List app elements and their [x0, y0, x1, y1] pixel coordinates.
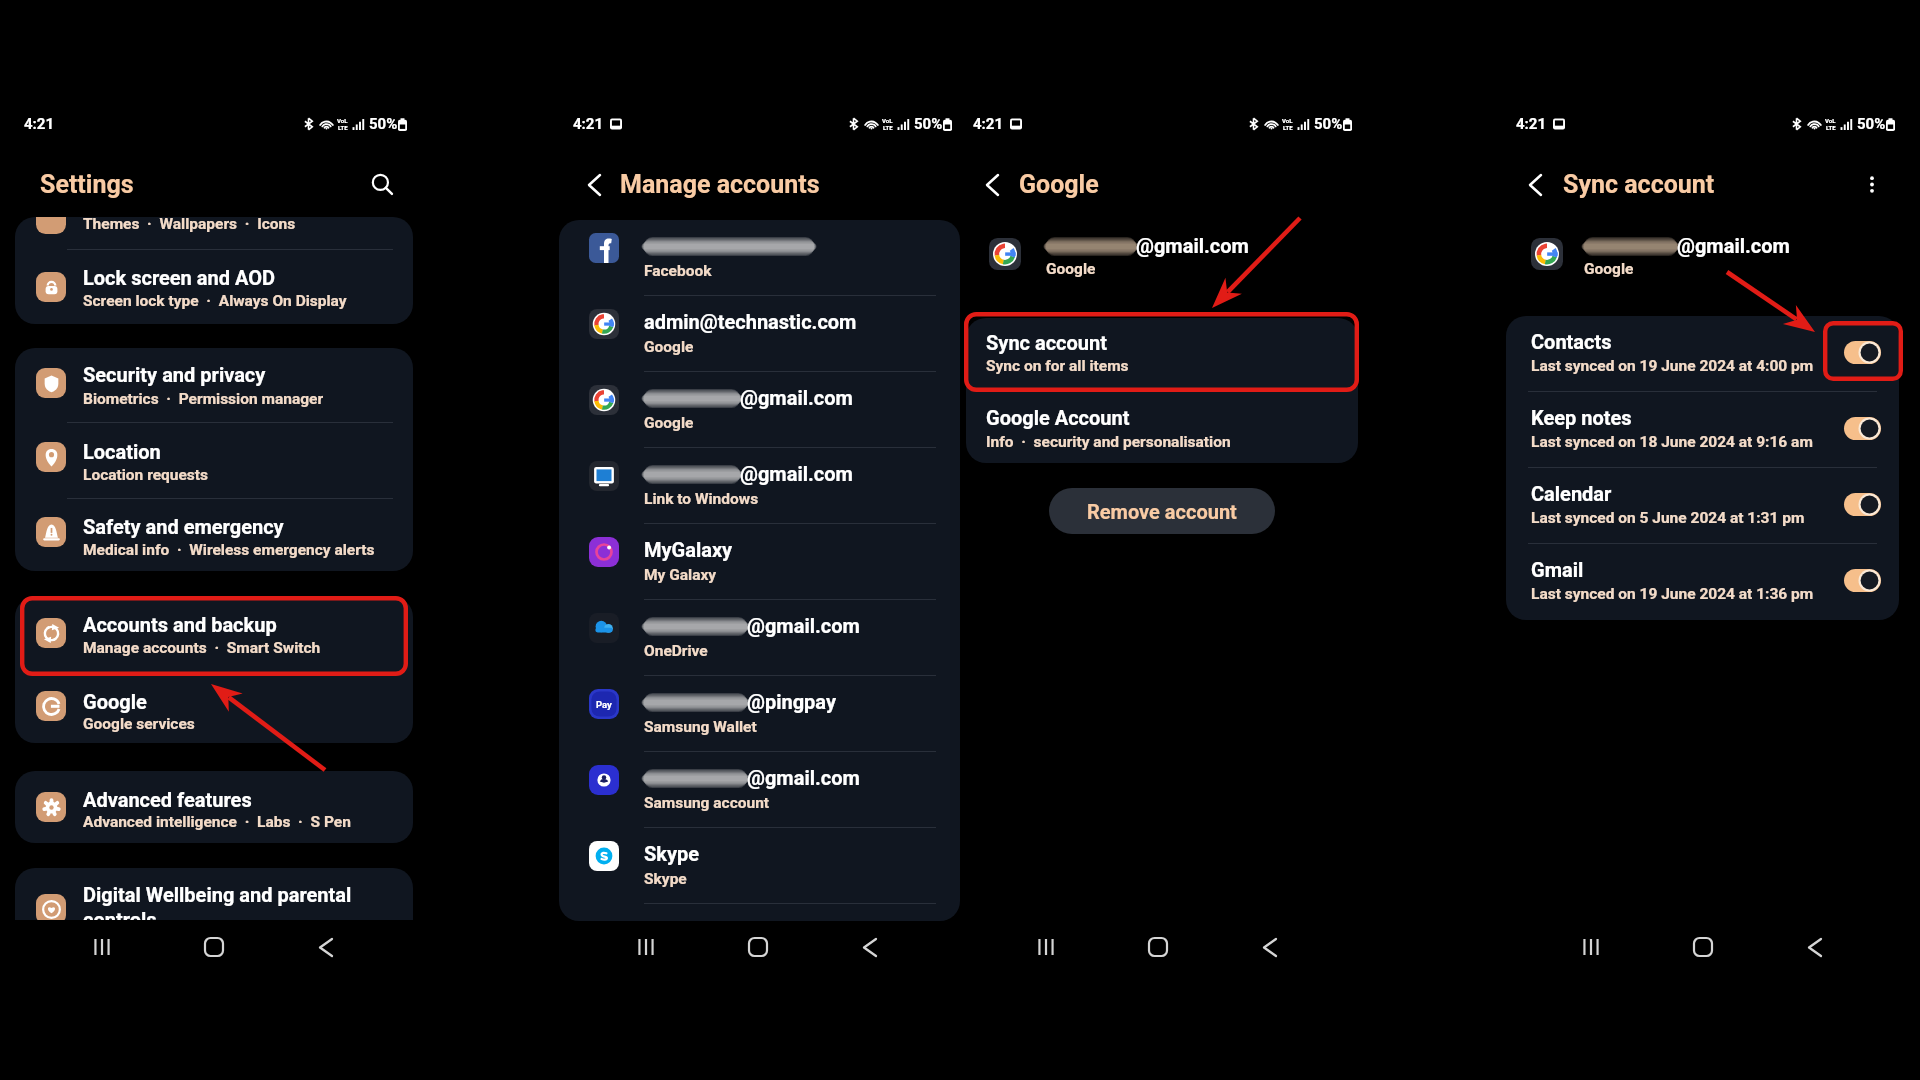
staticText: Sync account [1563, 170, 1715, 199]
staticText: Digital Wellbeing and parental controls [83, 883, 352, 920]
staticText: Security and privacy [83, 363, 266, 386]
button[interactable]: Toggle Keep notes [1844, 417, 1881, 440]
button[interactable] [559, 676, 960, 752]
staticText: Medical info · Wireless emergency alerts [83, 541, 375, 559]
staticText: Sync on for all items [986, 357, 1129, 375]
button[interactable] [1506, 468, 1899, 544]
button[interactable]: Navigate up [1518, 168, 1552, 202]
button[interactable]: Search [361, 163, 403, 205]
staticText: Google [644, 338, 694, 356]
button[interactable]: Back [304, 925, 348, 969]
staticText: Google Account [986, 406, 1130, 429]
staticText: Google [1019, 170, 1099, 199]
staticText: 50% [1314, 115, 1343, 133]
staticText: Google [83, 690, 147, 713]
staticText: Skype [644, 870, 687, 888]
staticText: 4:21 [1516, 115, 1547, 133]
staticText: LTE [1826, 124, 1836, 131]
staticText: Gmail [1531, 558, 1584, 581]
button[interactable]: Navigate up [577, 168, 611, 202]
button[interactable] [966, 391, 1358, 463]
staticText: Last synced on 5 June 2024 at 1:31 pm [1531, 509, 1805, 527]
staticText: Settings [40, 170, 134, 199]
staticText: LTE [338, 124, 348, 131]
staticText: Last synced on 19 June 2024 at 4:00 pm [1531, 357, 1814, 375]
staticText: Manage accounts · Smart Switch [83, 639, 321, 657]
staticText: Contacts [1531, 330, 1612, 353]
button[interactable] [559, 448, 960, 524]
staticText: Location [83, 440, 161, 463]
button[interactable]: Toggle Gmail [1844, 569, 1881, 592]
staticText: 50% [1857, 115, 1886, 133]
staticText: Facebook [644, 262, 712, 280]
staticText: 4:21 [573, 115, 604, 133]
button[interactable]: More options [1855, 167, 1889, 201]
staticText: Location requests [83, 466, 209, 484]
button[interactable]: Recents [624, 925, 668, 969]
staticText: Themes · Wallpapers · Icons [83, 217, 296, 233]
button[interactable]: Back [848, 925, 892, 969]
button[interactable]: Recents [1569, 925, 1613, 969]
button[interactable]: Back [1248, 925, 1292, 969]
staticText: MyGalaxy [644, 538, 733, 561]
button[interactable]: Navigate up [975, 168, 1009, 202]
staticText: Accounts and backup [83, 613, 277, 636]
staticText: Skype [644, 842, 700, 865]
staticText: @gmail.com [1136, 234, 1249, 257]
staticText: @gmail.com [740, 462, 853, 485]
staticText: VoL [337, 117, 348, 124]
staticText: Screen lock type · Always On Display [83, 292, 347, 310]
button[interactable] [1506, 316, 1899, 392]
staticText: Samsung account [644, 794, 770, 812]
staticText: @pingpay [747, 690, 836, 713]
staticText: Lock screen and AOD [83, 266, 275, 289]
staticText: 50% [369, 115, 398, 133]
staticText: 4:21 [973, 115, 1004, 133]
staticText: Google [1046, 260, 1096, 278]
staticText: Calendar [1531, 482, 1612, 505]
button[interactable] [559, 296, 960, 372]
staticText: @gmail.com [740, 386, 853, 409]
button[interactable] [559, 524, 960, 600]
button[interactable]: Home [1136, 925, 1180, 969]
button[interactable]: Home [1681, 925, 1725, 969]
staticText: Pay [596, 699, 612, 710]
button[interactable]: Toggle Contacts [1844, 341, 1881, 364]
button[interactable] [559, 600, 960, 676]
button[interactable] [15, 868, 413, 920]
staticText: Advanced features [83, 788, 252, 811]
staticText: Samsung Wallet [644, 718, 757, 736]
button[interactable] [15, 597, 413, 670]
button[interactable] [15, 250, 413, 324]
button[interactable] [15, 771, 413, 843]
button[interactable] [15, 348, 413, 423]
staticText: admin@technastic.com [644, 310, 857, 333]
button[interactable] [559, 220, 960, 296]
staticText: VoL [1282, 117, 1293, 124]
button[interactable] [966, 318, 1358, 390]
staticText: @gmail.com [1677, 234, 1790, 257]
staticText: Info · security and personalisation [986, 433, 1231, 451]
button[interactable]: Back [1793, 925, 1837, 969]
staticText: Keep notes [1531, 406, 1632, 429]
button[interactable] [559, 752, 960, 828]
button[interactable] [1506, 392, 1899, 468]
button[interactable]: Toggle Calendar [1844, 493, 1881, 516]
staticText: VoL [1825, 117, 1836, 124]
button[interactable] [15, 423, 413, 498]
staticText: Google services [83, 715, 195, 733]
button[interactable] [15, 498, 413, 571]
button[interactable]: Home [192, 925, 236, 969]
button[interactable] [15, 217, 413, 250]
button[interactable]: Remove account [1049, 488, 1275, 534]
button[interactable]: Home [736, 925, 780, 969]
button[interactable]: Recents [80, 925, 124, 969]
staticText: OneDrive [644, 642, 708, 660]
button[interactable] [559, 828, 960, 904]
button[interactable] [1506, 544, 1899, 620]
button[interactable]: Recents [1024, 925, 1068, 969]
button[interactable] [559, 372, 960, 448]
staticText: Advanced intelligence · Labs · S Pen [83, 813, 351, 831]
staticText: Manage accounts [620, 170, 820, 199]
button[interactable] [15, 670, 413, 743]
